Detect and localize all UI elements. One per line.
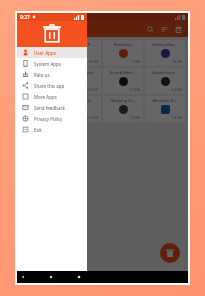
button[interactable]: Home bbox=[45, 271, 57, 283]
staticText: Image To P… bbox=[69, 42, 93, 47]
staticText: Medicine Di… bbox=[152, 98, 178, 103]
button[interactable]: Delete bbox=[172, 23, 184, 35]
staticText: More Apps bbox=[34, 94, 57, 100]
button[interactable]: Exit bbox=[17, 124, 87, 135]
button[interactable]: Battery Boo… bbox=[145, 40, 185, 66]
staticText: 18 MB bbox=[88, 59, 99, 64]
button[interactable]: Delete selected apps bbox=[160, 243, 180, 263]
button[interactable]: Apk Extractor bbox=[61, 68, 101, 94]
staticText: Action Incre… bbox=[152, 70, 178, 75]
button[interactable] bbox=[17, 13, 188, 271]
staticText: Sleeping So… bbox=[111, 98, 136, 103]
button[interactable]: Rate us bbox=[17, 69, 87, 80]
staticText: Battery Boo… bbox=[152, 42, 178, 47]
staticText: 11 MB bbox=[130, 59, 141, 64]
staticText: 10 MB bbox=[130, 115, 141, 120]
staticText: 9.4 MB bbox=[171, 87, 183, 92]
staticText: Poster Maker bbox=[27, 42, 53, 47]
staticText: Apk Extractor bbox=[68, 70, 94, 75]
staticText: 14 MB bbox=[172, 59, 183, 64]
button[interactable]: Back bbox=[17, 271, 29, 283]
staticText: Wifi Speed… bbox=[70, 98, 93, 103]
staticText: 6.8 MB bbox=[87, 115, 99, 120]
staticText: Send feedback bbox=[34, 105, 65, 111]
staticText: Share this app bbox=[34, 83, 65, 89]
button[interactable]: Sort bbox=[158, 23, 170, 35]
button[interactable]: Send feedback bbox=[17, 102, 87, 113]
button[interactable]: Action Incre… bbox=[145, 68, 185, 94]
button[interactable]: Share this app bbox=[17, 80, 87, 91]
button[interactable]: Birthdays bbox=[103, 40, 143, 66]
button[interactable]: System Apps bbox=[17, 58, 87, 69]
button[interactable]: Wifi Speed… bbox=[61, 96, 101, 122]
button[interactable]: Recent apps bbox=[73, 271, 85, 283]
staticText: System Apps bbox=[34, 61, 62, 67]
button[interactable]: Medicine Di… bbox=[145, 96, 185, 122]
staticText: User Apps bbox=[34, 50, 56, 56]
staticText: Birthdays bbox=[114, 42, 132, 47]
button[interactable]: Poster Maker bbox=[20, 40, 59, 66]
staticText: Privacy Policy bbox=[34, 116, 63, 122]
button[interactable]: Privacy Policy bbox=[17, 113, 87, 124]
staticText: 12 MB bbox=[46, 87, 57, 92]
staticText: 5.7 MB bbox=[129, 87, 141, 92]
staticText: 7.4 MB bbox=[171, 115, 183, 120]
button[interactable]: Sound Mete… bbox=[103, 68, 143, 94]
button[interactable]: Search bbox=[144, 23, 156, 35]
button[interactable]: Blue Light Fi… bbox=[20, 96, 59, 122]
staticText: 3.8 MB bbox=[87, 87, 99, 92]
staticText: 23 MB bbox=[46, 59, 57, 64]
staticText: Exit bbox=[34, 127, 42, 133]
button[interactable]: User Apps bbox=[17, 47, 87, 58]
staticText: 9:27 bbox=[20, 14, 30, 21]
staticText: Sound Mete… bbox=[110, 70, 136, 75]
button[interactable]: More Apps bbox=[17, 91, 87, 102]
button[interactable]: Move Apps bbox=[20, 68, 59, 94]
staticText: Rate us bbox=[34, 72, 50, 78]
staticText: Move Apps bbox=[29, 70, 50, 75]
staticText: Blue Light Fi… bbox=[26, 98, 53, 103]
staticText: 4.1 MB bbox=[45, 115, 57, 120]
button[interactable]: Image To P… bbox=[61, 40, 101, 66]
staticText: 9:27 bbox=[20, 14, 30, 21]
button[interactable]: Sleeping So… bbox=[103, 96, 143, 122]
